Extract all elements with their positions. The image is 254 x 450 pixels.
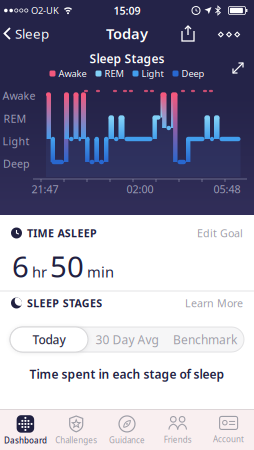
staticText: 30 Day Avg [95, 331, 158, 347]
button[interactable] [181, 25, 195, 42]
staticText: Benchmark [173, 331, 237, 347]
staticText: SLEEP STAGES [27, 296, 102, 310]
staticText: Light [141, 67, 163, 80]
button[interactable]: Challenges [51, 411, 101, 449]
staticText: Awake [58, 67, 86, 80]
button[interactable]: Sleep [3, 25, 49, 42]
staticText: Friends [164, 434, 192, 445]
staticText: Edit Goal [197, 226, 243, 240]
staticText: 15:09 [113, 3, 140, 18]
staticText: Learn More [185, 296, 243, 310]
staticText: Sleep Stages [89, 50, 164, 66]
staticText: O2-UK [31, 4, 59, 17]
staticText: 6 [12, 246, 29, 285]
staticText: Guidance [109, 435, 145, 445]
staticText: Account [213, 434, 244, 444]
staticText: hr [32, 262, 47, 281]
staticText: TIME ASLEEP [27, 226, 97, 240]
staticText: 21:47 [31, 182, 58, 196]
staticText: Deep [181, 67, 204, 80]
button[interactable]: Today [10, 327, 88, 352]
button[interactable]: Learn More [185, 296, 243, 310]
staticText: Awake [2, 88, 35, 103]
staticText: min [87, 262, 114, 281]
button[interactable] [232, 62, 244, 74]
button[interactable]: Friends [153, 411, 203, 449]
staticText: Today [32, 331, 65, 347]
staticText: Time spent in each stage of sleep [29, 366, 224, 382]
staticText: 50 [50, 246, 84, 285]
button[interactable]: Guidance [102, 411, 152, 449]
staticText: Deep [3, 156, 30, 171]
staticText: 02:00 [126, 182, 153, 196]
staticText: REM [104, 67, 123, 80]
staticText: Challenges [55, 435, 97, 445]
button[interactable]: Dashboard [0, 411, 50, 449]
staticText: REM [3, 111, 26, 126]
staticText: Dashboard [4, 435, 47, 446]
button[interactable]: Account [204, 411, 254, 449]
staticText: Light [2, 134, 29, 148]
button[interactable] [218, 32, 239, 37]
button[interactable]: Benchmark [166, 327, 244, 352]
button[interactable]: Edit Goal [197, 226, 243, 240]
staticText: 05:48 [213, 182, 240, 196]
staticText: Sleep [15, 25, 49, 42]
staticText: Today [106, 24, 148, 43]
button[interactable]: 30 Day Avg [88, 327, 166, 352]
